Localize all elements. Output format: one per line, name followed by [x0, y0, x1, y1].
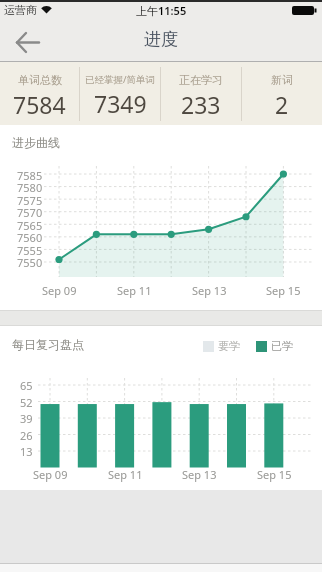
staticText: 13	[20, 444, 33, 459]
staticText: 要学	[218, 339, 240, 353]
staticText: 7575	[17, 193, 43, 208]
staticText: 7585	[17, 168, 43, 183]
staticText: 7555	[17, 243, 43, 258]
staticText: 39	[20, 411, 33, 426]
button[interactable]: 正在学习	[161, 62, 241, 125]
staticText: 进度	[144, 29, 178, 50]
staticText: Sep 11	[108, 467, 143, 482]
staticText: 52	[20, 395, 33, 410]
staticText: Sep 13	[182, 467, 217, 482]
staticText: 7550	[17, 255, 43, 270]
staticText: Sep 15	[266, 283, 301, 298]
staticText: 已学	[271, 339, 293, 353]
staticText: Sep 11	[117, 283, 152, 298]
staticText: 233	[181, 89, 221, 120]
staticText: Sep 15	[257, 467, 292, 482]
staticText: Sep 09	[42, 283, 77, 298]
staticText: 7570	[17, 205, 43, 220]
staticText: 进步曲线	[12, 135, 60, 150]
button[interactable]	[0, 20, 46, 62]
staticText: 7565	[17, 218, 43, 233]
staticText: 7349	[94, 88, 147, 119]
button[interactable]: 单词总数	[0, 62, 79, 125]
staticText: 7580	[17, 180, 43, 195]
staticText: 已经掌握/简单词	[85, 73, 156, 86]
staticText: 65	[20, 378, 33, 393]
staticText: 上午11:55	[136, 3, 187, 18]
staticText: Sep 09	[33, 467, 68, 482]
button[interactable]: 已经掌握/简单词	[80, 62, 160, 125]
staticText: 每日复习盘点	[12, 337, 84, 352]
staticText: 新词	[271, 73, 293, 87]
button[interactable]: 新词	[242, 62, 322, 125]
staticText: 单词总数	[18, 73, 62, 87]
button[interactable]: 要学	[203, 339, 293, 353]
staticText: 运营商	[4, 3, 37, 17]
staticText: 7584	[13, 89, 66, 120]
staticText: 正在学习	[179, 73, 223, 87]
staticText: 26	[20, 428, 33, 443]
staticText: 7560	[17, 230, 43, 245]
staticText: Sep 13	[192, 283, 227, 298]
staticText: 2	[275, 89, 289, 120]
